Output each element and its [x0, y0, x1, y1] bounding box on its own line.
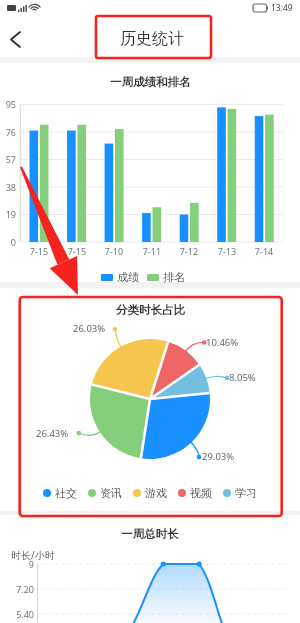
- staticText: 38: [0, 181, 16, 193]
- staticText: 视频: [190, 486, 212, 500]
- staticText: 8.05%: [229, 371, 256, 384]
- button[interactable]: 学习: [223, 486, 257, 500]
- button[interactable]: 视频: [178, 486, 212, 500]
- staticText: 7-13: [209, 245, 245, 257]
- staticText: 分类时长占比: [116, 303, 185, 317]
- staticText: 7-14: [246, 245, 282, 257]
- staticText: 7-11: [134, 245, 170, 257]
- staticText: 成绩: [117, 270, 139, 284]
- staticText: 资讯: [100, 486, 122, 500]
- button[interactable]: Back: [0, 19, 35, 59]
- staticText: 7-15: [21, 245, 57, 257]
- staticText: 10.46%: [206, 336, 239, 349]
- staticText: 7-15: [59, 245, 95, 257]
- staticText: 13:49: [271, 2, 293, 14]
- staticText: 学习: [235, 486, 257, 500]
- button[interactable]: 一周总时长: [0, 515, 300, 623]
- staticText: 7-10: [96, 245, 132, 257]
- staticText: 95: [0, 98, 16, 110]
- staticText: 76: [0, 126, 16, 138]
- staticText: 社交: [55, 486, 77, 500]
- staticText: 26.03%: [73, 322, 106, 335]
- staticText: 57: [0, 153, 16, 165]
- staticText: 29.03%: [202, 450, 235, 463]
- button[interactable]: 游戏: [133, 486, 167, 500]
- button[interactable]: 资讯: [88, 486, 122, 500]
- staticText: 26.43%: [36, 427, 69, 440]
- staticText: 19: [0, 208, 16, 220]
- staticText: 9: [0, 558, 34, 570]
- staticText: 历史统计: [120, 29, 184, 49]
- button[interactable]: 一周成绩和排名: [0, 63, 300, 282]
- button[interactable]: 排名: [147, 270, 185, 284]
- staticText: 时长/小时: [11, 548, 55, 562]
- staticText: 7-12: [171, 245, 207, 257]
- staticText: 5.40: [0, 608, 34, 620]
- button[interactable]: 分类时长占比: [0, 288, 300, 511]
- button[interactable]: 成绩: [101, 270, 139, 284]
- button[interactable]: 社交: [43, 486, 77, 500]
- staticText: 游戏: [145, 486, 167, 500]
- staticText: 7.20: [0, 583, 34, 595]
- staticText: 0: [0, 236, 16, 248]
- staticText: 排名: [163, 270, 185, 284]
- staticText: 一周成绩和排名: [110, 75, 191, 89]
- staticText: 一周总时长: [121, 527, 179, 541]
